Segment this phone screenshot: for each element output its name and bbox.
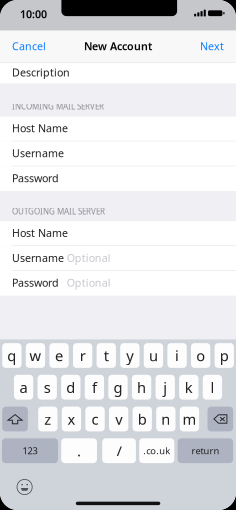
staticText: v [115, 409, 122, 429]
staticText: c [92, 409, 99, 429]
button[interactable]: w [26, 343, 45, 368]
button[interactable]: u [144, 343, 163, 368]
staticText: m [182, 409, 196, 429]
staticText: Optional [67, 251, 111, 265]
button[interactable]: t [97, 343, 116, 368]
button[interactable]: Delete [207, 407, 233, 431]
staticText: y [126, 346, 133, 365]
staticText: a [20, 377, 28, 397]
staticText: New Account [84, 39, 152, 53]
staticText: OUTGOING MAIL SERVER [12, 206, 105, 217]
button[interactable]: n [156, 407, 175, 431]
staticText: r [80, 346, 86, 365]
button[interactable]: j [156, 375, 175, 400]
staticText: Description [12, 65, 70, 79]
button[interactable]: e [49, 343, 69, 368]
staticText: Password [12, 171, 59, 185]
button[interactable]: h [132, 375, 151, 400]
staticText: s [44, 377, 51, 397]
button[interactable]: y [120, 343, 139, 368]
button[interactable]: Password [0, 166, 236, 191]
button[interactable]: Username [0, 141, 236, 166]
staticText: Host Name [12, 226, 68, 240]
button[interactable]: Emoji [17, 479, 32, 495]
staticText: t [104, 346, 109, 365]
button[interactable]: z [38, 407, 57, 431]
staticText: Username [12, 146, 64, 160]
button[interactable]: q [2, 343, 21, 368]
staticText: Username [12, 251, 64, 265]
button[interactable]: i [167, 343, 187, 368]
staticText: k [185, 377, 193, 397]
button[interactable]: g [108, 375, 128, 400]
staticText: Host Name [12, 121, 68, 135]
staticText: Cancel [12, 39, 46, 53]
button[interactable]: Host Name [0, 116, 236, 141]
staticText: .co.uk [143, 444, 170, 457]
staticText: i [175, 346, 179, 365]
button[interactable]: Description [0, 62, 236, 83]
button[interactable]: . [61, 438, 97, 463]
staticText: b [138, 409, 147, 429]
button[interactable]: / [102, 438, 136, 463]
staticText: q [7, 346, 16, 365]
staticText: j [163, 377, 167, 397]
staticText: Next [200, 39, 224, 53]
button[interactable]: x [62, 407, 81, 431]
button[interactable]: l [203, 375, 222, 400]
staticText: d [66, 377, 75, 397]
button[interactable]: Host Name [0, 221, 236, 246]
button[interactable]: .co.uk [139, 438, 174, 463]
staticText: INCOMING MAIL SERVER [12, 101, 104, 112]
staticText: h [137, 377, 146, 397]
staticText: / [117, 441, 122, 460]
button[interactable]: Shift [2, 407, 28, 431]
button[interactable]: d [61, 375, 80, 400]
staticText: e [55, 346, 63, 365]
staticText: w [29, 346, 41, 365]
button[interactable]: Next [190, 31, 236, 62]
staticText: . [77, 441, 81, 460]
button[interactable]: Password [0, 271, 236, 296]
button[interactable]: Username [0, 246, 236, 271]
staticText: l [210, 377, 214, 397]
staticText: o [196, 346, 205, 365]
button[interactable]: 123 [2, 438, 58, 463]
button[interactable]: c [85, 407, 105, 431]
button[interactable]: r [73, 343, 92, 368]
button[interactable]: b [133, 407, 152, 431]
staticText: p [220, 346, 229, 365]
staticText: g [113, 377, 122, 397]
staticText: Optional [67, 276, 111, 290]
button[interactable]: s [37, 375, 57, 400]
staticText: 123 [22, 444, 37, 457]
staticText: x [67, 409, 75, 429]
button[interactable]: a [14, 375, 33, 400]
button[interactable]: k [179, 375, 198, 400]
staticText: u [149, 346, 158, 365]
button[interactable]: m [180, 407, 199, 431]
button[interactable]: Cancel [0, 31, 56, 62]
staticText: z [44, 409, 51, 429]
button[interactable]: return [178, 438, 233, 463]
staticText: return [191, 444, 219, 457]
button[interactable]: o [191, 343, 210, 368]
button[interactable]: v [109, 407, 128, 431]
button[interactable]: f [85, 375, 104, 400]
button[interactable]: p [215, 343, 234, 368]
staticText: 10:00 [20, 7, 47, 21]
staticText: Password [12, 276, 59, 290]
staticText: f [92, 377, 97, 397]
staticText: n [161, 409, 170, 429]
